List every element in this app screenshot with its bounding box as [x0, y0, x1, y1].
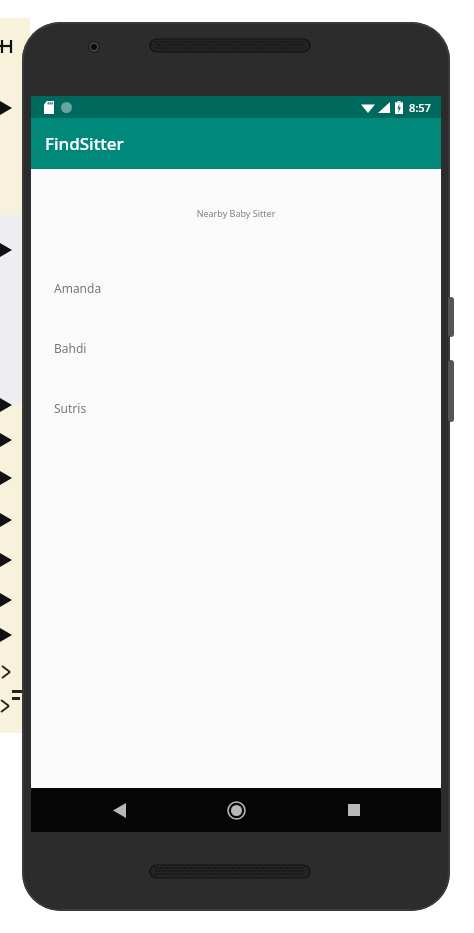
button[interactable]: Recent apps [324, 788, 384, 832]
button[interactable]: FindSitter [31, 118, 441, 169]
staticText: Amanda [54, 280, 102, 296]
staticText: Bahdi [54, 340, 87, 356]
button[interactable]: Bahdi [31, 340, 441, 400]
button[interactable]: Amanda [31, 280, 441, 340]
staticText: Nearby Baby Sitter [31, 207, 441, 219]
button[interactable]: Back [89, 788, 149, 832]
staticText: 8:57 [409, 100, 431, 115]
staticText: Sutris [54, 400, 87, 416]
staticText: FindSitter [45, 132, 124, 155]
button[interactable]: Home [206, 788, 266, 832]
button[interactable]: Sutris [31, 400, 441, 460]
